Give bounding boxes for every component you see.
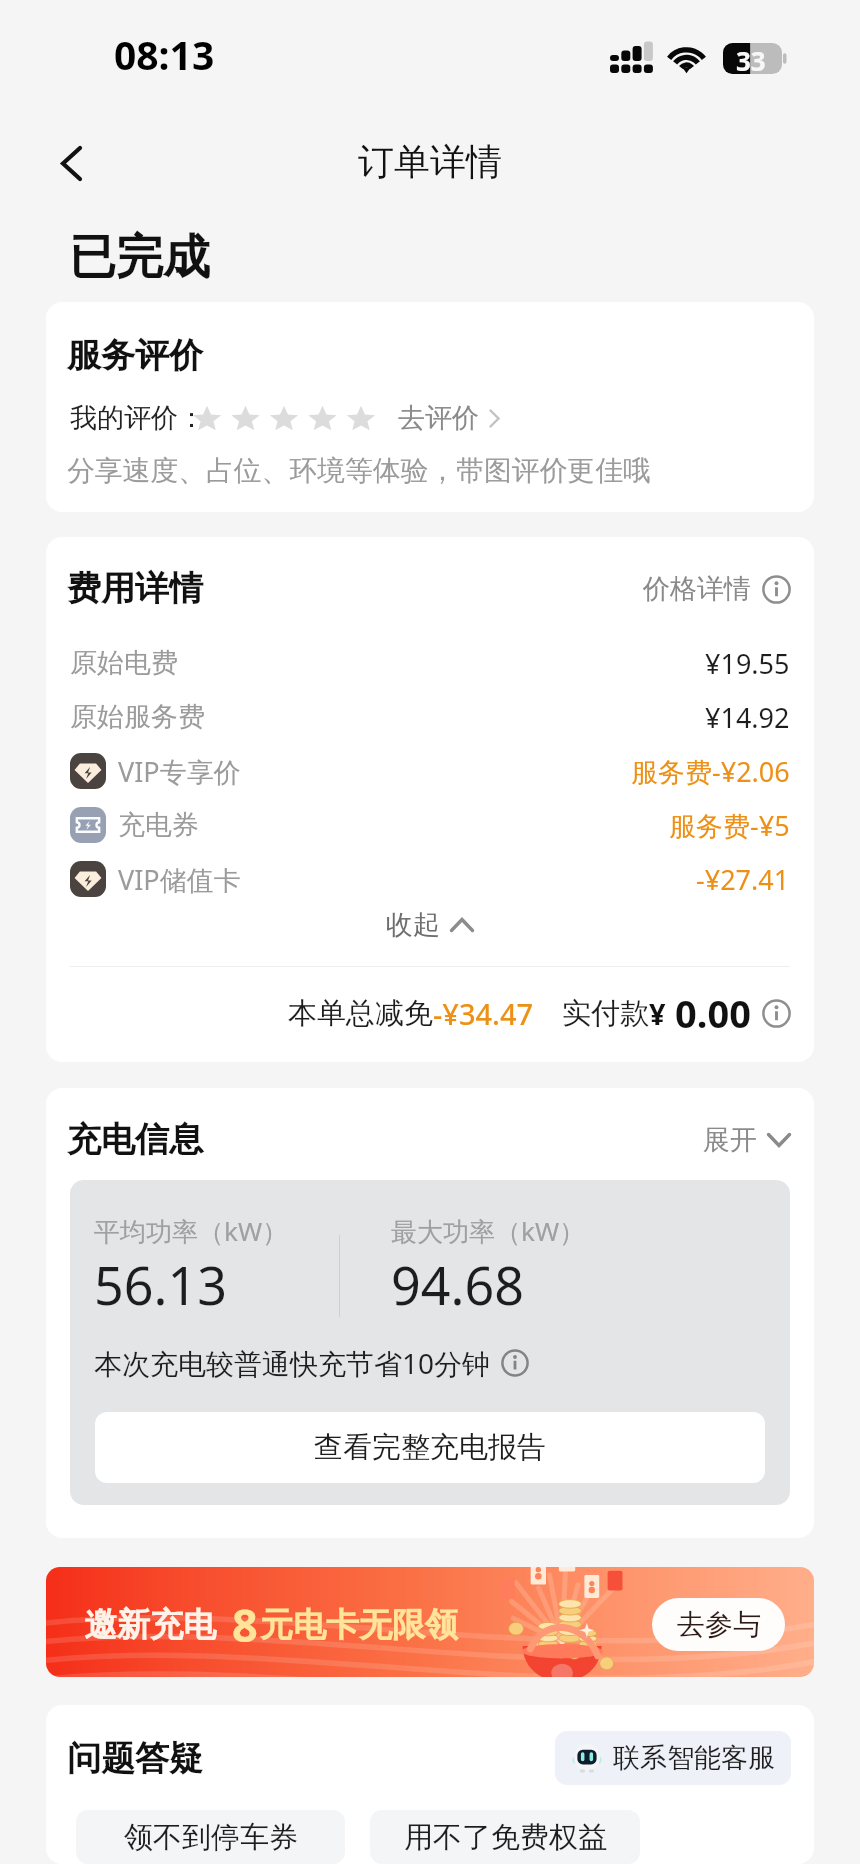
- staticText: 56.13: [94, 1249, 227, 1317]
- staticText: 问题答疑: [67, 1737, 203, 1780]
- staticText: 充电信息: [67, 1118, 203, 1161]
- staticText: -¥27.41: [696, 861, 790, 898]
- staticText: 领不到停车券: [124, 1819, 298, 1856]
- staticText: 我的评价：: [70, 401, 205, 435]
- staticText: 原始服务费: [70, 700, 205, 734]
- staticText: 联系智能客服: [613, 1741, 775, 1775]
- staticText: 去参与: [677, 1607, 761, 1642]
- staticText: 收起: [386, 908, 440, 942]
- staticText: 用不了免费权益: [404, 1819, 607, 1856]
- staticText: VIP储值卡: [118, 861, 241, 898]
- staticText: 价格详情: [643, 572, 751, 606]
- staticText: 已完成: [69, 228, 210, 287]
- staticText: 最大功率（kW）: [391, 1213, 586, 1249]
- button[interactable]: 价格详情: [643, 572, 791, 606]
- staticText: 展开: [703, 1123, 757, 1157]
- staticText: 0.00: [675, 987, 751, 1039]
- staticText: 充电券: [118, 808, 199, 842]
- staticText: 查看完整充电报告: [314, 1429, 546, 1466]
- button[interactable]: 用不了免费权益: [370, 1810, 640, 1864]
- staticText: 本次充电较普通快充节省10分钟: [94, 1344, 491, 1382]
- staticText: 服务费-¥2.06: [631, 753, 790, 790]
- button[interactable]: Back: [40, 132, 102, 194]
- staticText: VIP专享价: [118, 753, 241, 790]
- staticText: 08:13: [114, 28, 215, 81]
- staticText: 去评价: [398, 401, 479, 435]
- staticText: ¥14.92: [705, 699, 790, 736]
- staticText: -¥34.47: [433, 994, 534, 1033]
- button[interactable]: 领不到停车券: [76, 1810, 345, 1864]
- staticText: ¥: [649, 994, 666, 1033]
- button[interactable]: 展开: [703, 1123, 791, 1157]
- staticText: 服务费-¥5: [669, 807, 790, 844]
- button[interactable]: 邀新充电: [46, 1567, 814, 1677]
- staticText: 33: [736, 43, 766, 73]
- button[interactable]: 联系智能客服: [555, 1731, 791, 1785]
- button[interactable]: 查看完整充电报告: [95, 1412, 765, 1483]
- staticText: 服务评价: [67, 334, 203, 377]
- staticText: 平均功率（kW）: [94, 1213, 289, 1249]
- staticText: 费用详情: [67, 567, 203, 610]
- button[interactable]: 我的评价：: [46, 401, 814, 435]
- staticText: 8: [232, 1594, 258, 1655]
- staticText: ¥19.55: [705, 645, 790, 682]
- staticText: 原始电费: [70, 646, 178, 680]
- button[interactable]: 去参与: [652, 1598, 785, 1651]
- staticText: 分享速度、占位、环境等体验，带图评价更佳哦: [67, 453, 651, 488]
- staticText: 元电卡无限领: [260, 1604, 458, 1646]
- staticText: 实付款: [562, 995, 649, 1032]
- staticText: 订单详情: [358, 139, 502, 184]
- staticText: 94.68: [391, 1249, 524, 1317]
- staticText: 本单总减免: [288, 995, 433, 1032]
- staticText: 邀新充电: [84, 1604, 216, 1646]
- button[interactable]: 收起: [46, 908, 814, 942]
